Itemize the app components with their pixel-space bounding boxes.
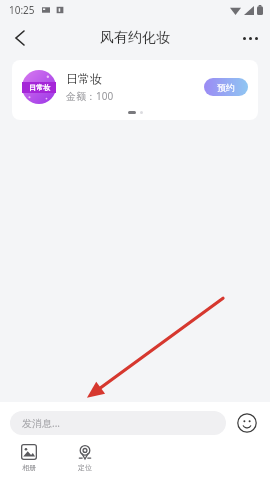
staticText: 金额：100 [66, 89, 114, 103]
staticText: 定位 [78, 463, 92, 472]
button[interactable]: More options [230, 20, 270, 56]
staticText: 10:25 [9, 3, 35, 17]
staticText: 预约 [217, 82, 235, 93]
staticText: 风有约化妆 [100, 29, 170, 47]
button[interactable]: 日常妆 [12, 60, 258, 120]
staticText: 相册 [22, 463, 36, 472]
button[interactable]: Location [66, 444, 104, 472]
button[interactable]: 预约 [204, 78, 248, 96]
button[interactable]: Album [10, 444, 48, 472]
staticText: 日常妆 [66, 71, 102, 86]
staticText: 发消息... [22, 416, 61, 430]
button[interactable]: Emoji [234, 410, 260, 436]
button[interactable]: Back [0, 20, 40, 56]
staticText: 日常妆 [29, 83, 50, 92]
button[interactable]: 发消息... [10, 411, 226, 435]
